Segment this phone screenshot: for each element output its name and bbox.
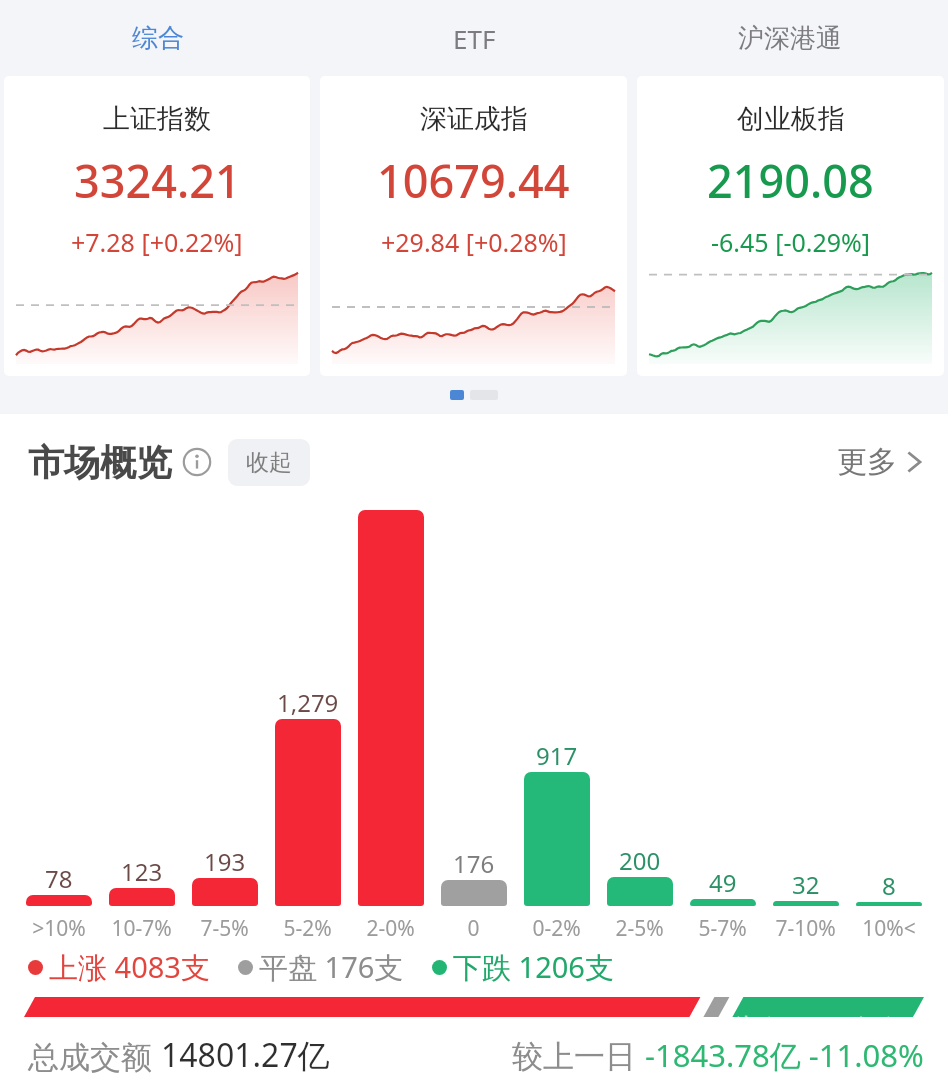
staticText: 10%< [862,914,916,943]
staticText: 上证指数 [103,102,211,136]
staticText: -1843.78亿 -11.08% [645,1034,924,1076]
button[interactable] [26,895,92,906]
button[interactable] [358,510,424,906]
staticText: 8 [882,869,896,902]
button[interactable] [275,719,341,906]
staticText: 32 [792,868,820,901]
staticText: 7-5% [200,914,249,943]
button[interactable]: 综合 [0,0,316,76]
staticText: 2-0% [366,914,415,943]
button[interactable] [109,888,175,906]
staticText: 综合 [132,22,184,55]
button[interactable]: 沪深港通 [632,0,948,76]
button[interactable]: 平盘 176支 [238,947,404,987]
button[interactable]: 深证成指 [320,76,627,376]
staticText: +29.84 [+0.28%] [381,225,567,259]
staticText: ETF [453,21,496,56]
staticText: 市场概览 [28,440,172,485]
button[interactable]: 说明 [182,447,212,477]
button[interactable] [690,899,756,906]
button[interactable]: 更多 [837,443,924,481]
staticText: 平盘 176支 [259,947,404,987]
button[interactable]: 上涨 4083支 [28,947,210,987]
staticText: 上涨 4083支 [49,947,210,987]
staticText: 0 [467,914,480,943]
button[interactable]: 创业板指 [637,76,944,376]
button[interactable] [192,878,258,906]
button[interactable] [773,901,839,906]
staticText: 头条 @一个布衣 [731,1009,932,1047]
staticText: 5-2% [283,914,332,943]
staticText: 7-10% [775,914,836,943]
button[interactable]: ETF [316,0,632,76]
staticText: 下跌 1206支 [453,947,614,987]
staticText: 14801.27亿 [161,1033,330,1077]
staticText: 917 [536,739,578,772]
staticText: 更多 [837,443,897,481]
staticText: 2-5% [615,914,664,943]
staticText: 沪深港通 [738,22,842,55]
staticText: 2190.08 [707,150,874,211]
staticText: 创业板指 [737,102,845,136]
staticText: 收起 [246,448,292,477]
button[interactable]: 下跌 1206支 [432,947,614,987]
staticText: 193 [204,845,246,878]
button[interactable] [524,772,590,906]
staticText: 1,279 [277,686,339,719]
staticText: 176 [453,847,495,880]
staticText: 123 [121,855,163,888]
staticText: +7.28 [+0.22%] [71,225,243,259]
staticText: 0-2% [532,914,581,943]
staticText: 3324.21 [74,150,241,211]
button[interactable]: 收起 [228,439,310,486]
staticText: 200 [619,844,661,877]
button[interactable] [441,880,507,906]
button[interactable] [607,877,673,906]
button[interactable]: 上证指数 [4,76,310,376]
staticText: 深证成指 [420,102,528,136]
staticText: >10% [32,914,86,943]
staticText: 5-7% [698,914,747,943]
staticText: 10679.44 [377,150,570,211]
staticText: 49 [709,866,737,899]
staticText: -6.45 [-0.29%] [711,225,871,259]
staticText: 较上一日 [512,1034,645,1076]
staticText: 10-7% [111,914,172,943]
staticText: 78 [45,862,73,895]
staticText: 总成交额 [28,1035,161,1077]
button[interactable] [856,902,922,906]
